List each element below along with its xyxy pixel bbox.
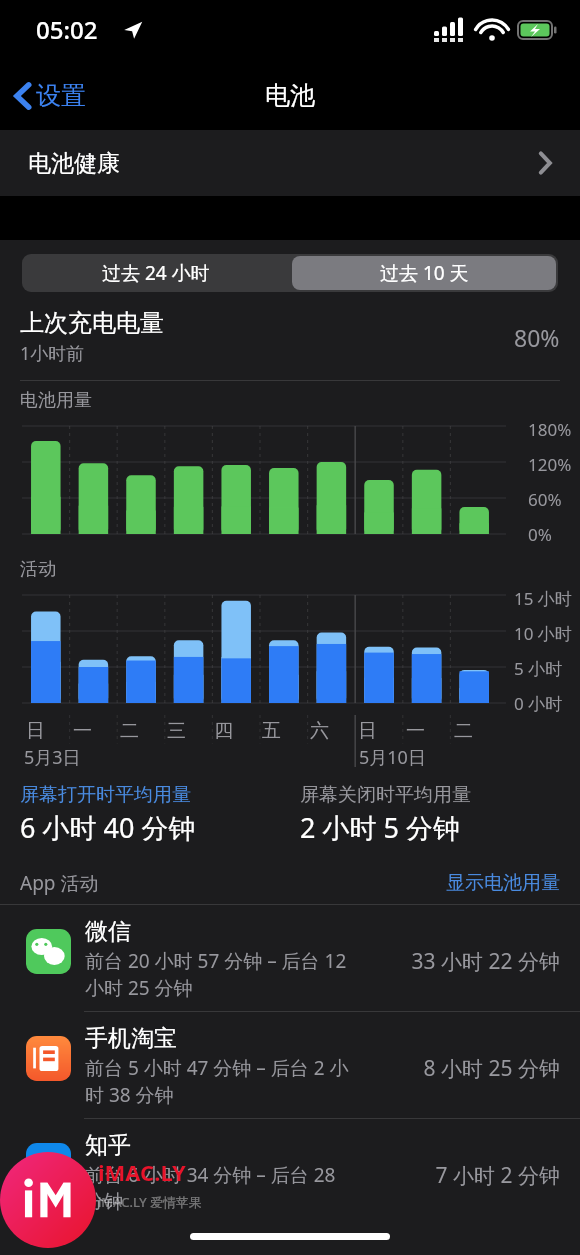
button[interactable]: 微信 xyxy=(0,905,580,1011)
staticText: 前台 5 小时 47 分钟 – 后台 2 小 时 38 分钟 xyxy=(85,1055,349,1108)
staticText: 6 小时 40 分钟 xyxy=(20,809,196,846)
button[interactable]: 电池健康 xyxy=(0,130,580,196)
staticText: 5月10日 xyxy=(359,745,426,767)
staticText: 7 小时 2 分钟 xyxy=(435,1161,560,1190)
staticText: 电池 xyxy=(265,80,315,111)
staticText: 5月3日 xyxy=(24,745,81,767)
staticText: 120% xyxy=(528,453,572,476)
staticText: 1小时前 xyxy=(20,341,85,366)
staticText: App 活动 xyxy=(20,870,99,896)
staticText: 10 小时 xyxy=(514,622,572,645)
button[interactable]: 过去 10 天 xyxy=(292,256,556,290)
staticText: 0% xyxy=(528,523,552,546)
staticText: 5 小时 xyxy=(514,657,563,680)
staticText: 显示电池用量 xyxy=(446,871,560,895)
staticText: 前台 20 小时 57 分钟 – 后台 12 小时 25 分钟 xyxy=(85,948,347,1001)
staticText: 过去 24 小时 xyxy=(102,260,210,286)
staticText: 180% xyxy=(528,418,572,441)
staticText: 五 xyxy=(262,719,281,743)
button[interactable]: 设置 xyxy=(0,74,98,117)
staticText: 活动 xyxy=(20,558,56,581)
staticText: 电池用量 xyxy=(20,389,92,412)
staticText: 二 xyxy=(454,719,473,743)
staticText: 2 小时 5 分钟 xyxy=(300,809,460,846)
staticText: 微信 xyxy=(85,917,131,946)
staticText: 电池健康 xyxy=(28,149,120,178)
staticText: 0 小时 xyxy=(514,692,563,715)
staticText: 屏幕关闭时平均用量 xyxy=(300,783,471,807)
staticText: 六 xyxy=(310,719,329,743)
staticText: 日 xyxy=(358,719,377,743)
staticText: 一 xyxy=(73,719,92,743)
button[interactable]: 过去 24 小时 xyxy=(22,254,290,292)
staticText: 上次充电电量 xyxy=(20,308,164,338)
button[interactable]: 知乎 xyxy=(0,1118,580,1224)
staticText: iMAC.LY xyxy=(98,1157,186,1187)
staticText: iMAC.LY 爱情苹果 xyxy=(98,1193,203,1211)
staticText: 二 xyxy=(120,719,139,743)
staticText: 05:02 xyxy=(36,13,98,46)
staticText: 8 小时 25 分钟 xyxy=(423,1054,560,1083)
staticText: 15 小时 xyxy=(514,587,572,610)
staticText: 屏幕打开时平均用量 xyxy=(20,783,191,807)
staticText: 设置 xyxy=(36,80,86,111)
staticText: 日 xyxy=(26,719,45,743)
staticText: 过去 10 天 xyxy=(380,260,469,286)
staticText: 33 小时 22 分钟 xyxy=(411,947,560,976)
staticText: 80% xyxy=(514,322,560,353)
staticText: 四 xyxy=(214,719,233,743)
staticText: 60% xyxy=(528,488,562,511)
button[interactable]: 显示电池用量 xyxy=(446,871,560,895)
staticText: 手机淘宝 xyxy=(85,1024,177,1053)
staticText: 前台 6 小时 34 分钟 – 后台 28 分钟 xyxy=(85,1162,336,1214)
staticText: 知乎 xyxy=(85,1131,131,1160)
staticText: 三 xyxy=(167,719,186,743)
button[interactable]: 手机淘宝 xyxy=(0,1011,580,1118)
staticText: 一 xyxy=(406,719,425,743)
